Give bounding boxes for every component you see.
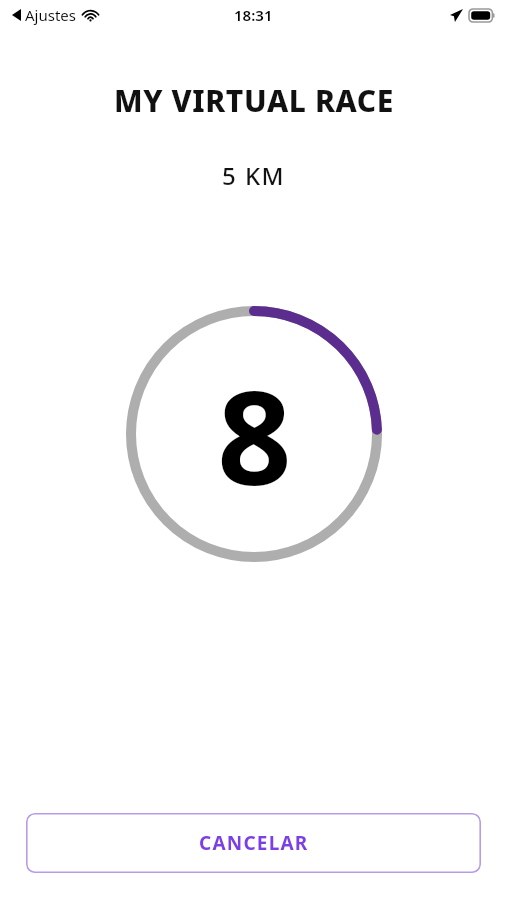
staticText: Ajustes <box>25 5 76 25</box>
staticText: CANCELAR <box>199 830 309 856</box>
staticText: MY VIRTUAL RACE <box>114 80 394 121</box>
staticText: 5 KM <box>222 159 285 192</box>
button[interactable]: Cancelar <box>26 813 481 873</box>
staticText: 8 <box>217 346 292 523</box>
staticText: 18:31 <box>234 5 273 25</box>
